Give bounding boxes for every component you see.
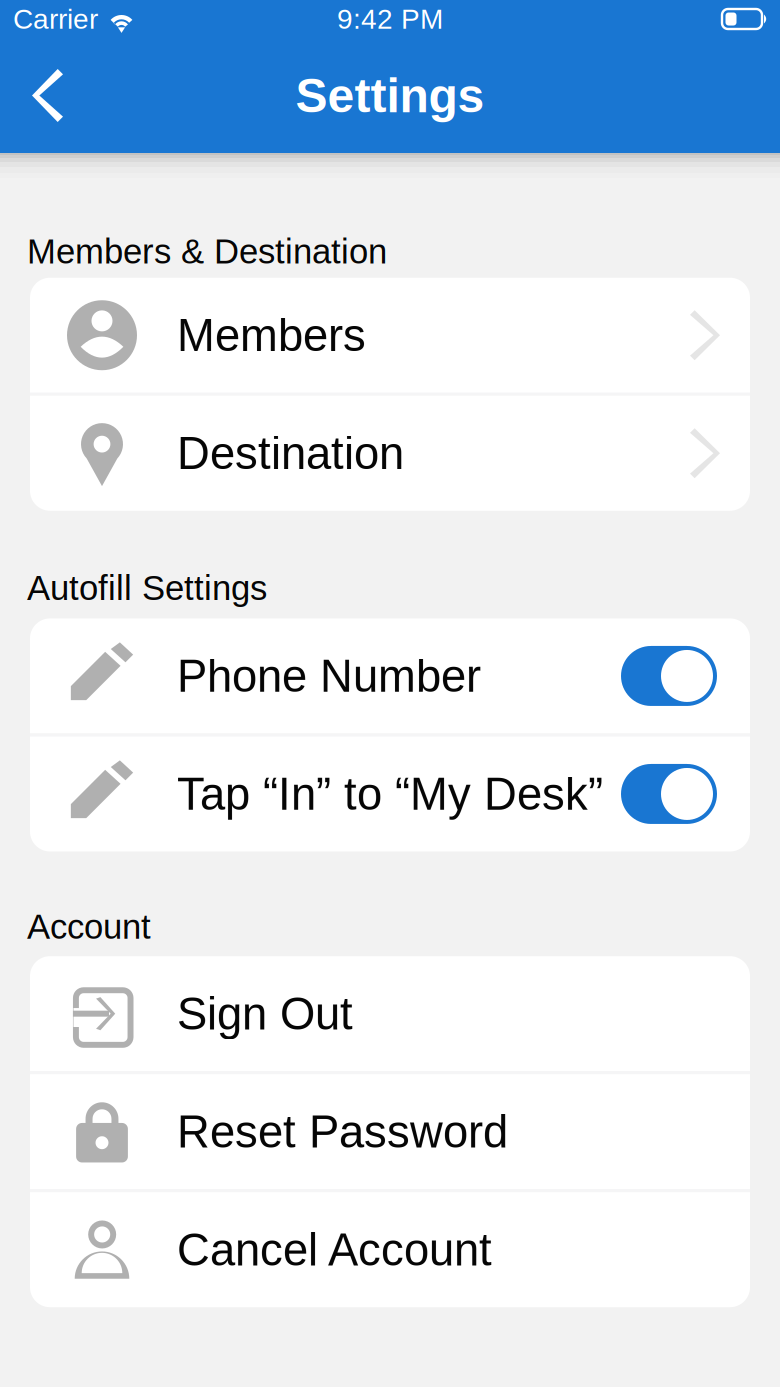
button[interactable]: Members [30,278,750,393]
button[interactable]: Back [32,69,63,122]
staticText: 9:42 PM [337,3,443,35]
staticText: Cancel Account [177,1224,492,1275]
button[interactable]: Destination [30,396,750,511]
staticText: Carrier [13,3,98,35]
button[interactable]: Reset Password [30,1074,750,1189]
staticText: Destination [177,428,404,478]
button[interactable]: Sign Out [30,956,750,1071]
button[interactable]: Phone Number [30,618,750,733]
staticText: Autofill Settings [27,569,267,607]
staticText: Members & Destination [27,232,387,271]
staticText: Tap “In” to “My Desk” [177,769,603,819]
staticText: Account [27,907,151,946]
staticText: Phone Number [177,651,481,701]
button[interactable]: Tap “In” to “My Desk” [30,736,750,851]
staticText: Settings [295,69,484,122]
staticText: Members [177,310,366,360]
staticText: Reset Password [177,1106,508,1157]
staticText: Sign Out [177,988,353,1039]
button[interactable]: Cancel Account [30,1192,750,1307]
